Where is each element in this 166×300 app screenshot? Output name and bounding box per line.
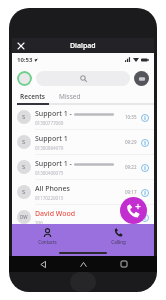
staticText: Contacts [38,239,57,245]
button[interactable]: Profile [17,71,32,86]
staticText: 01170220015 [35,195,64,201]
button[interactable]: Call details [140,113,149,122]
staticText: Calling [111,239,126,245]
button[interactable]: Close [15,40,27,52]
staticText: 09:0 [128,214,137,220]
staticText: 09:22 [125,164,137,170]
staticText: David Wood [35,209,76,219]
staticText: 01300777060 [35,120,64,126]
staticText: Support 1 - [35,159,72,169]
button[interactable]: Call details [140,188,149,197]
button[interactable]: Call details [140,213,149,222]
button[interactable]: Calling [83,224,154,249]
staticText: 01300984970 [35,145,64,151]
staticText: 206 [35,220,43,226]
staticText: DW [20,214,28,220]
button[interactable]: S [12,155,154,179]
staticText: All Phones [35,184,70,194]
button[interactable]: Missed [56,90,84,103]
button[interactable] [36,71,130,86]
staticText: 09:29 [125,139,137,145]
button[interactable]: New call [120,197,147,224]
button[interactable]: Recents [117,257,131,271]
staticText: Dialpad [70,41,96,51]
button[interactable]: Recents [17,90,49,103]
staticText: Support 1 [35,134,68,144]
staticText: 10:35 [125,114,137,120]
button[interactable]: Dialpad [134,71,149,86]
button[interactable]: S [12,180,154,204]
button[interactable]: S [12,130,154,154]
button[interactable]: Call details [140,163,149,172]
button[interactable]: Call details [140,138,149,147]
staticText: Missed [59,92,81,101]
button[interactable]: DW [12,205,154,229]
button[interactable]: Contacts [12,224,83,249]
staticText: Support 1 - [35,109,72,119]
staticText: 01300400075 [35,170,64,176]
staticText: 09:17 [125,189,137,195]
staticText: S [22,113,26,121]
button[interactable]: S [12,105,154,129]
staticText: S [22,163,26,171]
staticText: Recents [20,92,46,101]
staticText: S [22,188,26,196]
button[interactable]: Home [76,257,90,271]
staticText: S [22,138,26,146]
staticText: 10:53 [17,56,33,64]
button[interactable]: Back [36,257,50,271]
